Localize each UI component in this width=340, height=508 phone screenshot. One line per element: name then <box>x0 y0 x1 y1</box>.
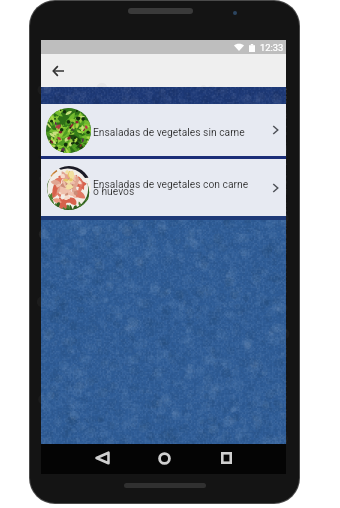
staticText: 12:33 <box>260 42 284 53</box>
button[interactable]: Back <box>88 444 116 472</box>
button[interactable]: Recents <box>212 444 240 472</box>
button[interactable]: Ensaladas de vegetales sin carne <box>41 104 286 156</box>
button[interactable]: Ensaladas de vegetales con carne o huevo… <box>41 159 286 216</box>
button[interactable]: Back <box>47 60 69 82</box>
button[interactable]: Home <box>150 444 178 472</box>
staticText: Ensaladas de vegetales con carne o huevo… <box>93 178 249 197</box>
staticText: Ensaladas de vegetales sin carne <box>93 126 245 138</box>
